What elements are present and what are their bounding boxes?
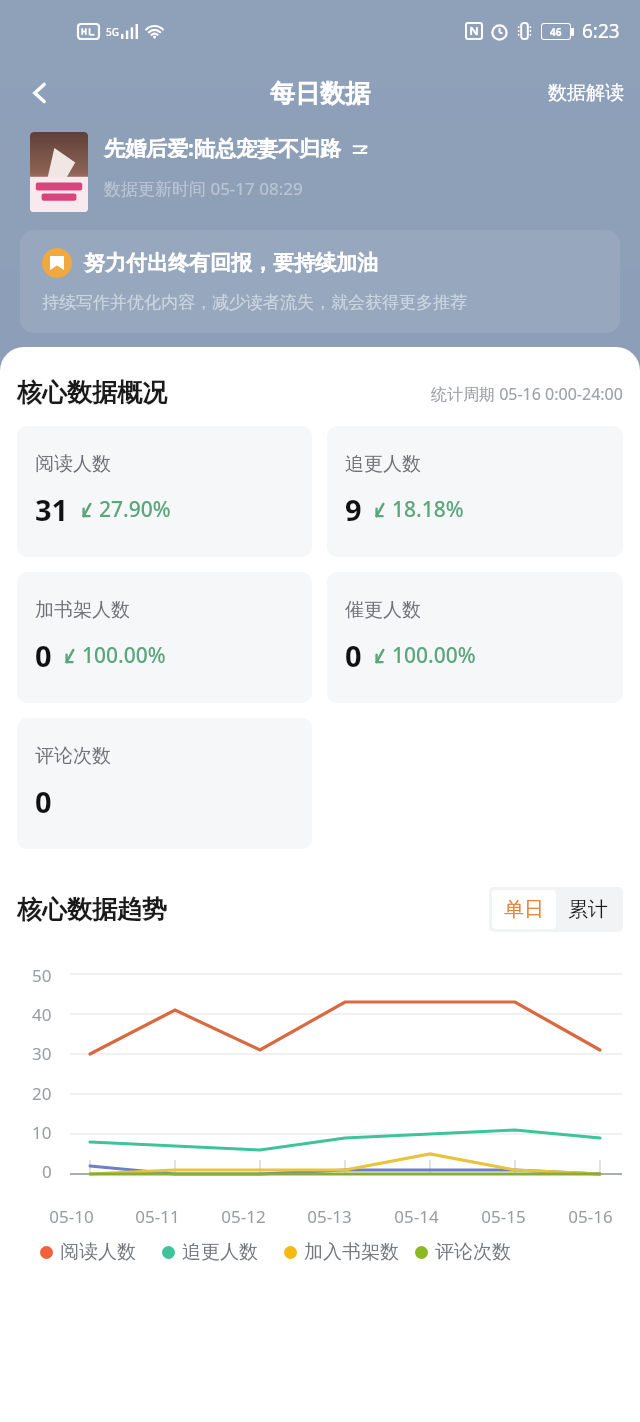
staticText: 努力付出终有回报，要持续加油 <box>84 250 378 276</box>
button[interactable]: 努力付出终有回报，要持续加油 <box>20 230 620 333</box>
staticText: 评论次数 <box>35 744 111 768</box>
staticText: 27.90% <box>99 495 171 524</box>
staticText: 05-10 <box>49 1205 94 1228</box>
staticText: 05-15 <box>481 1205 526 1228</box>
button[interactable]: 追更人数 <box>327 426 623 557</box>
staticText: 核心数据概况 <box>17 377 167 408</box>
staticText: 持续写作并优化内容，减少读者流失，就会获得更多推荐 <box>42 292 467 313</box>
staticText: 单日 <box>504 897 544 922</box>
staticText: 9 <box>345 490 362 529</box>
staticText: 05-14 <box>394 1205 439 1228</box>
button[interactable]: Back <box>14 67 66 119</box>
staticText: 数据解读 <box>548 81 624 105</box>
staticText: 05-13 <box>307 1205 352 1228</box>
staticText: 0 <box>42 1160 52 1183</box>
button[interactable]: 加书架人数 <box>17 572 312 703</box>
button[interactable]: 单日 <box>492 890 556 929</box>
staticText: 统计周期 05-16 0:00-24:00 <box>431 383 623 405</box>
staticText: 追更人数 <box>345 452 421 476</box>
staticText: 阅读人数 <box>60 1240 136 1264</box>
staticText: 0 <box>35 782 52 821</box>
staticText: 0 <box>345 636 362 675</box>
staticText: 追更人数 <box>182 1240 258 1264</box>
staticText: 50 <box>32 964 52 987</box>
staticText: 10 <box>32 1121 52 1144</box>
staticText: 累计 <box>568 897 608 922</box>
staticText: 18.18% <box>392 495 464 524</box>
staticText: 阅读人数 <box>35 452 111 476</box>
staticText: 0 <box>35 636 52 675</box>
button[interactable]: 催更人数 <box>327 572 623 703</box>
button[interactable]: 先婚后爱:陆总宠妻不归路 <box>104 134 369 163</box>
staticText: 加入书架数 <box>304 1240 399 1264</box>
staticText: 数据更新时间 05-17 08:29 <box>104 177 303 200</box>
staticText: 评论次数 <box>435 1240 511 1264</box>
staticText: 每日数据 <box>270 78 370 109</box>
button[interactable]: 评论次数 <box>17 718 312 849</box>
staticText: 核心数据趋势 <box>17 894 167 925</box>
staticText: 05-11 <box>135 1205 180 1228</box>
button[interactable]: 累计 <box>556 890 620 929</box>
staticText: 加书架人数 <box>35 598 130 622</box>
staticText: 30 <box>32 1042 52 1065</box>
staticText: 100.00% <box>392 641 476 670</box>
staticText: 05-12 <box>221 1205 266 1228</box>
staticText: 46 <box>550 25 562 39</box>
button[interactable]: 数据解读 <box>548 81 624 105</box>
staticText: 5G <box>106 25 119 39</box>
staticText: 先婚后爱:陆总宠妻不归路 <box>104 134 341 163</box>
staticText: 31 <box>35 490 69 529</box>
staticText: 催更人数 <box>345 598 421 622</box>
staticText: 40 <box>32 1003 52 1026</box>
staticText: 6:23 <box>582 18 620 44</box>
button[interactable]: 阅读人数 <box>17 426 312 557</box>
staticText: 05-16 <box>568 1205 613 1228</box>
staticText: 100.00% <box>82 641 166 670</box>
staticText: 20 <box>32 1082 52 1105</box>
